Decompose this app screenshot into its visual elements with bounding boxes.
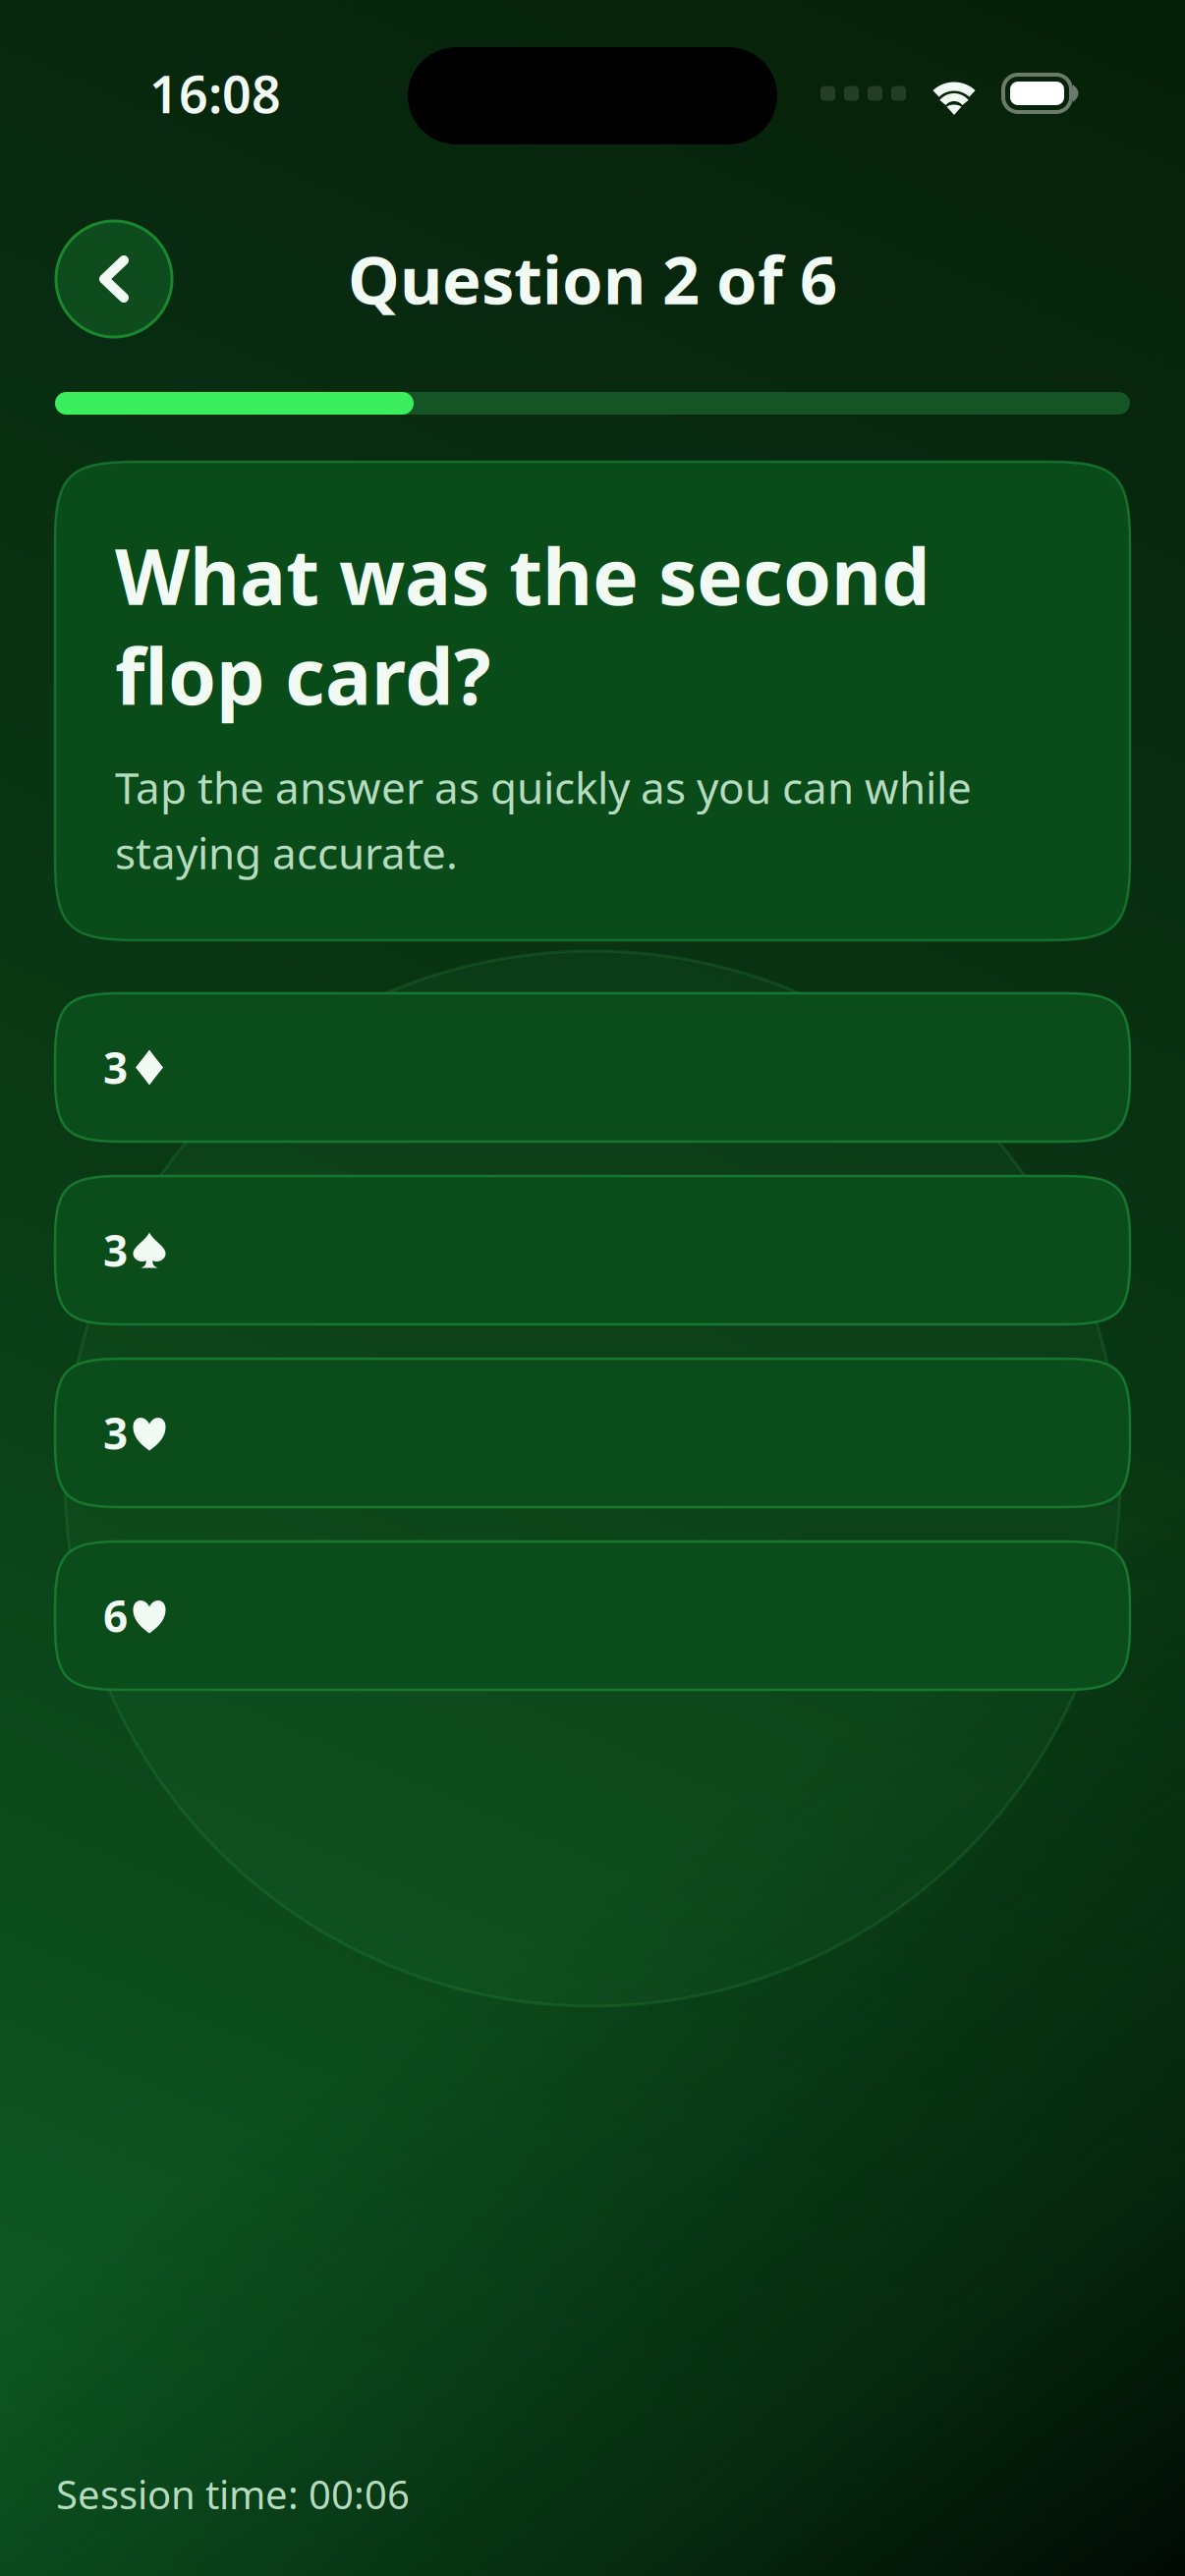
- button[interactable]: 6: [55, 1541, 1130, 1690]
- staticText: Tap the answer as quickly as you can whi…: [115, 758, 972, 881]
- staticText: 3: [103, 1221, 128, 1279]
- staticText: Question 2 of 6: [348, 235, 837, 322]
- button[interactable]: Back: [56, 221, 172, 337]
- button[interactable]: 3: [55, 1359, 1130, 1507]
- staticText: 3: [103, 1039, 128, 1096]
- staticText: What was the second flop card?: [115, 524, 931, 726]
- staticText: 16:08: [149, 59, 281, 127]
- button[interactable]: 3: [55, 1176, 1130, 1324]
- staticText: 6: [103, 1587, 128, 1644]
- button[interactable]: 3: [55, 993, 1130, 1142]
- staticText: Session time: 00:06: [56, 2468, 410, 2520]
- staticText: 3: [103, 1404, 128, 1462]
